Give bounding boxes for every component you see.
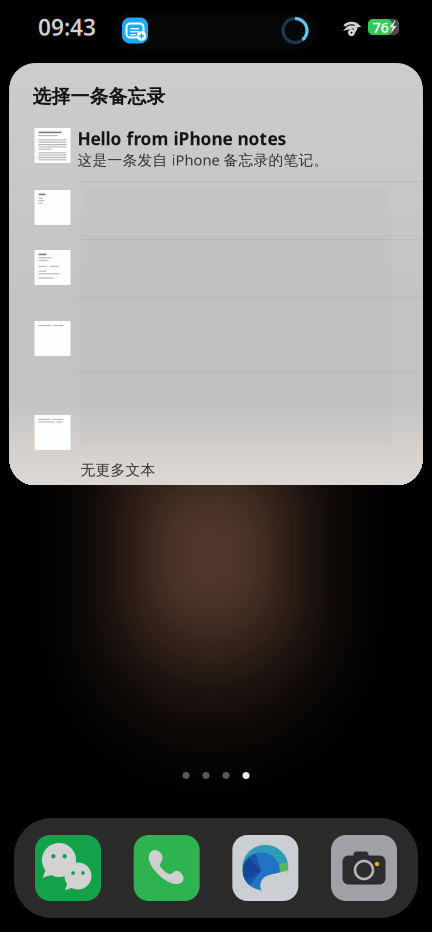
staticText: 这是一条发自 iPhone 备忘录的笔记。	[77, 150, 328, 169]
button[interactable]: Hello from iPhone notes	[9, 127, 422, 175]
button[interactable]: 微信	[35, 835, 101, 901]
staticText: 选择一条备忘录	[32, 85, 165, 108]
staticText: 76	[372, 17, 388, 37]
button[interactable]: Microsoft Edge	[232, 835, 298, 901]
button[interactable]: 备忘录 3	[9, 250, 422, 307]
button[interactable]: 备忘录 2	[9, 190, 422, 239]
button[interactable]: 备忘录 5	[9, 415, 422, 459]
button[interactable]: 相机	[331, 835, 397, 901]
button[interactable]: 电话	[134, 835, 200, 901]
staticText: 无更多文本	[80, 461, 155, 479]
button[interactable]: 备忘录 4	[9, 321, 422, 390]
staticText: Hello from iPhone notes	[77, 127, 286, 150]
staticText: 09:43	[38, 12, 96, 42]
